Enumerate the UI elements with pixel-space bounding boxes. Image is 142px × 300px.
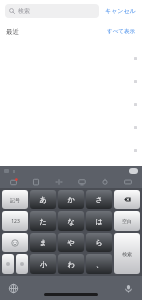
staticText: 最近 [6,28,19,36]
button[interactable]: 、 [86,254,112,274]
staticText: ら [95,238,103,247]
button[interactable]: ら [86,233,112,252]
button[interactable]: 検索 [114,233,140,274]
button[interactable]: カーソル [47,176,70,188]
button[interactable]: クリップボード [25,176,47,188]
button[interactable]: は [86,211,112,231]
button[interactable]: や [58,233,84,252]
staticText: 検索 [18,7,30,15]
staticText: あ [39,195,47,204]
button[interactable]: 空白 [114,211,140,231]
staticText: た [39,217,47,226]
button[interactable]: キーボード切替 [116,176,139,188]
staticText: や [67,238,75,247]
staticText: 123 [11,218,20,225]
button[interactable]: キー [2,254,14,274]
button[interactable]: 音声入力 [123,283,134,294]
button[interactable]: ま [30,233,56,252]
staticText: すべて表示 [107,28,135,35]
staticText: ま [39,238,47,247]
button[interactable]: 絵文字 [2,233,28,252]
staticText: わ [67,260,75,269]
button[interactable]: 検索 [5,4,99,18]
button[interactable]: あ [30,190,56,209]
button[interactable]: 削除 [114,190,140,209]
staticText: 小 [40,260,47,269]
staticText: は [95,217,103,226]
staticText: キャンセル [105,7,136,15]
button[interactable]: キャンセル [103,5,138,17]
button[interactable]: な [58,211,84,231]
button[interactable]: ツール [3,176,25,188]
staticText: 検索 [122,251,132,257]
staticText: 空白 [122,218,132,224]
button[interactable]: か [58,190,84,209]
staticText: な [67,217,75,226]
button[interactable]: 候補を展開 [129,168,138,174]
staticText: 記号 [10,197,20,203]
button[interactable]: た [30,211,56,231]
button[interactable]: 小 [30,254,56,274]
button[interactable]: 変換 [70,176,93,188]
button[interactable]: さ [86,190,112,209]
button[interactable]: 索引 [128,43,142,166]
button[interactable]: 記号 [2,190,28,209]
button[interactable]: キー [16,254,28,274]
button[interactable]: 地球儀 [8,283,19,294]
staticText: 、 [96,260,103,269]
button[interactable]: 123 [2,211,28,231]
button[interactable]: わ [58,254,84,274]
button[interactable]: すべて表示 [106,26,136,37]
staticText: さ [95,195,103,204]
staticText: か [67,195,75,204]
button[interactable]: 設定 [93,176,116,188]
